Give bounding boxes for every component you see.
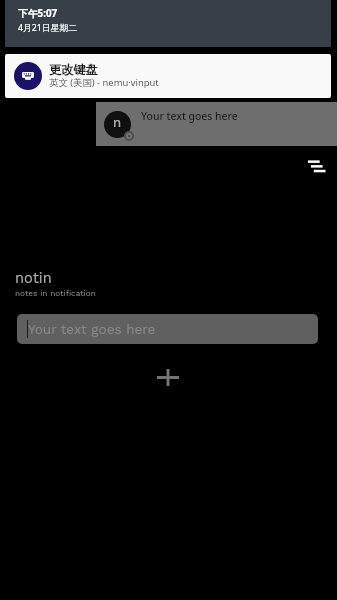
staticText: n <box>113 113 122 131</box>
staticText: notes in notification <box>15 288 96 298</box>
button[interactable]: Sort notes <box>298 148 334 184</box>
staticText: 下午5:07 <box>18 7 58 20</box>
button[interactable]: Add note <box>147 357 188 398</box>
staticText: 4月21日星期二 <box>18 22 78 34</box>
button[interactable]: 更改键盘 <box>5 54 331 98</box>
staticText: 英文 (美国) - nemu·vinput <box>49 76 159 89</box>
staticText: Your text goes here <box>141 109 238 123</box>
staticText: Your text goes here <box>28 321 156 337</box>
button[interactable]: Your text goes here <box>17 314 318 344</box>
staticText: notin <box>15 269 52 286</box>
button[interactable]: n <box>96 102 337 146</box>
staticText: 更改键盘 <box>49 62 98 77</box>
